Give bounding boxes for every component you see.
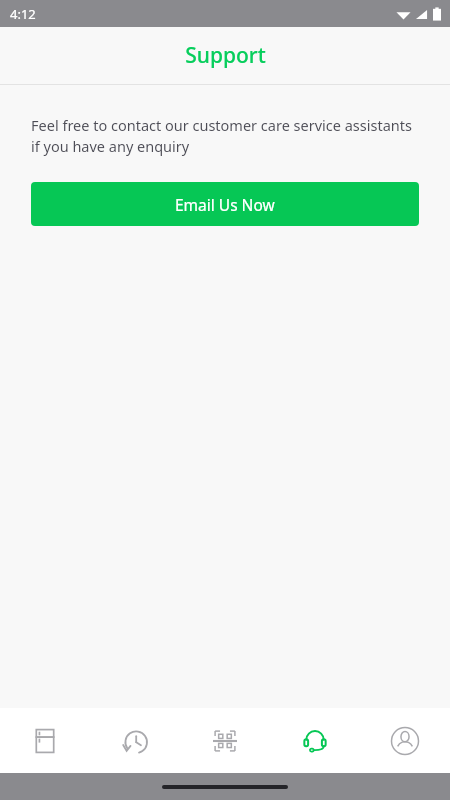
button[interactable]: Fridge [0, 708, 90, 773]
button[interactable]: Scan QR code [180, 708, 270, 773]
button[interactable]: Profile [360, 708, 450, 773]
staticText: Support [185, 41, 266, 70]
staticText: Email Us Now [175, 194, 275, 215]
button[interactable]: History [90, 708, 180, 773]
staticText: 4:12 [10, 5, 36, 23]
button[interactable]: Support [270, 708, 360, 773]
staticText: Feel free to contact our customer care s… [31, 115, 412, 157]
button[interactable]: Email Us Now [31, 182, 419, 226]
